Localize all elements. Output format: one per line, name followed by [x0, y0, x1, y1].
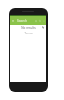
staticText: No results: [21, 26, 36, 29]
button[interactable]: Navigate up: [11, 19, 15, 23]
button[interactable]: Search: [15, 18, 34, 24]
button[interactable]: More options: [42, 19, 46, 23]
staticText: Search: [17, 19, 28, 23]
button[interactable]: Voice search: [34, 19, 38, 23]
staticText: Try ag: [24, 32, 33, 34]
button[interactable]: Search: [38, 19, 42, 23]
